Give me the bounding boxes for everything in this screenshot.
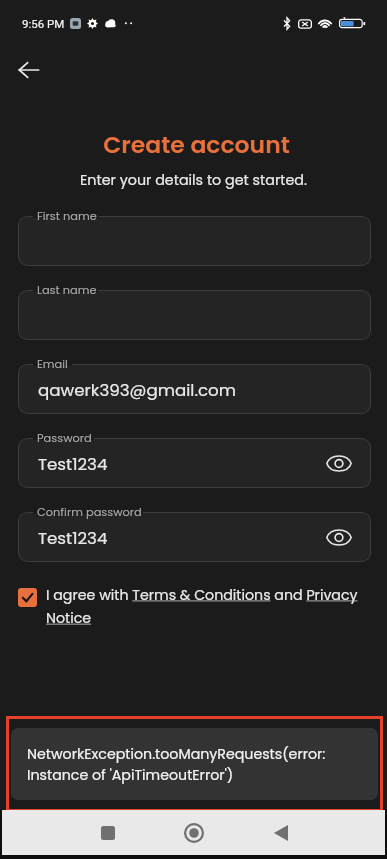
staticText: NetworkException.tooManyRequests(error: … xyxy=(27,744,326,785)
staticText: Enter your details to get started. xyxy=(0,170,387,190)
staticText: Last name xyxy=(37,282,97,298)
button[interactable]: Home xyxy=(174,813,214,853)
button[interactable] xyxy=(18,438,371,488)
button[interactable] xyxy=(18,512,371,562)
button[interactable]: Back xyxy=(9,50,49,90)
staticText: qawerk393@gmail.com xyxy=(38,378,236,401)
staticText: Test1234 xyxy=(38,452,108,475)
button[interactable] xyxy=(18,290,371,340)
staticText: Test1234 xyxy=(38,526,108,549)
staticText: Email xyxy=(37,356,68,372)
staticText: I agree with Terms & Conditions and Priv… xyxy=(46,585,371,628)
staticText: First name xyxy=(37,208,97,224)
staticText: Confirm password xyxy=(37,504,142,520)
button[interactable] xyxy=(18,216,371,266)
button[interactable] xyxy=(18,364,371,414)
button[interactable]: Toggle password visibility xyxy=(326,524,352,550)
staticText: Password xyxy=(37,430,92,446)
button[interactable]: Toggle password visibility xyxy=(326,450,352,476)
button[interactable]: Recents xyxy=(88,813,128,853)
button[interactable]: NetworkException.tooManyRequests(error: … xyxy=(11,728,378,800)
staticText: 9:56 PM xyxy=(22,17,65,30)
button[interactable]: I agree with Terms & Conditions and Priv… xyxy=(18,585,371,628)
staticText: Create account xyxy=(3,128,387,161)
button[interactable]: Back xyxy=(261,813,301,853)
